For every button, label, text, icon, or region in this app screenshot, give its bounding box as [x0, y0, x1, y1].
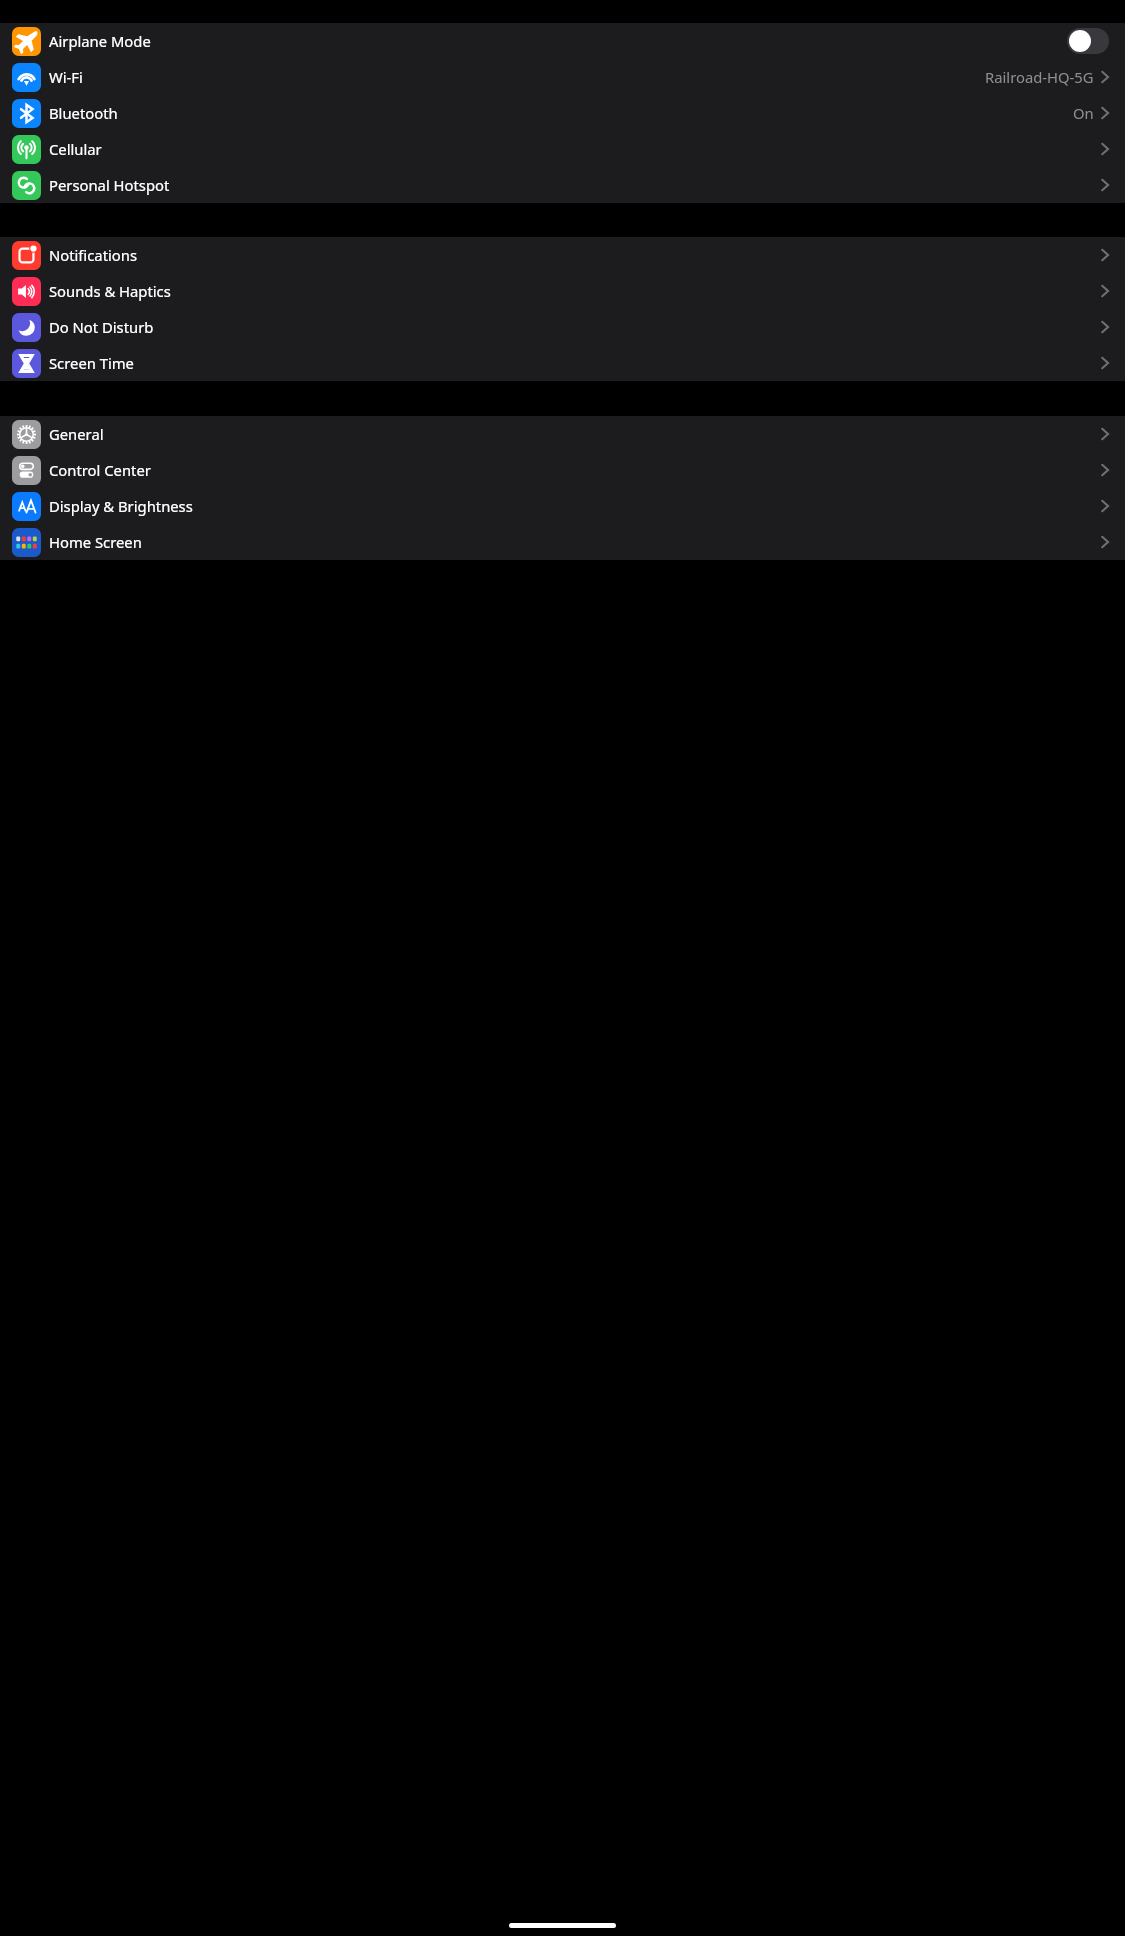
staticText: Personal Hotspot	[49, 175, 170, 195]
staticText: Bluetooth	[49, 103, 118, 123]
button[interactable]: Notifications	[0, 237, 1125, 273]
staticText: Do Not Disturb	[49, 317, 154, 337]
staticText: Control Center	[49, 460, 151, 480]
button[interactable]: Do Not Disturb	[0, 309, 1125, 345]
button[interactable]: Personal Hotspot	[0, 167, 1125, 203]
button[interactable]: Sounds & Haptics	[0, 273, 1125, 309]
button[interactable]: Bluetooth	[0, 95, 1125, 131]
staticText: Home Screen	[49, 532, 142, 552]
staticText: Display & Brightness	[49, 496, 193, 516]
staticText: Airplane Mode	[49, 31, 151, 51]
button[interactable]: Display & Brightness	[0, 488, 1125, 524]
button[interactable]: Airplane Mode toggle	[1067, 28, 1109, 54]
staticText: Railroad-HQ-5G	[985, 67, 1094, 87]
staticText: Cellular	[49, 139, 102, 159]
staticText: Notifications	[49, 245, 138, 265]
staticText: Sounds & Haptics	[49, 281, 171, 301]
button[interactable]: Airplane Mode	[0, 23, 1125, 59]
staticText: Screen Time	[49, 353, 134, 373]
button[interactable]: Home Screen	[0, 524, 1125, 560]
button[interactable]: Control Center	[0, 452, 1125, 488]
staticText: Wi-Fi	[49, 67, 83, 87]
staticText: On	[1073, 103, 1094, 123]
button[interactable]: Cellular	[0, 131, 1125, 167]
button[interactable]: General	[0, 416, 1125, 452]
button[interactable]: Screen Time	[0, 345, 1125, 381]
button[interactable]: Wi-Fi	[0, 59, 1125, 95]
staticText: General	[49, 424, 104, 444]
